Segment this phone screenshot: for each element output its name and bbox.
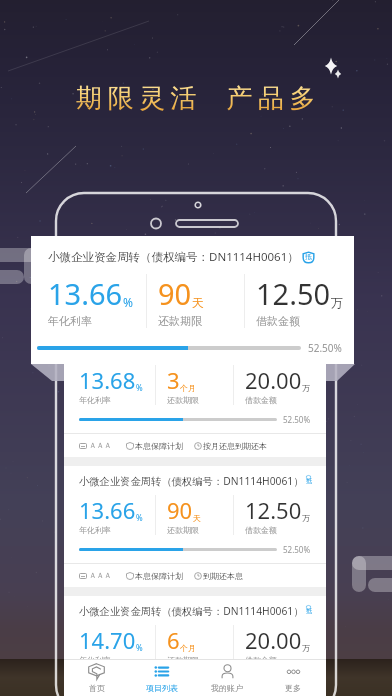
staticText: % xyxy=(123,294,133,310)
staticText: 借款金额 xyxy=(245,525,277,535)
button[interactable]: 我的账户 xyxy=(194,660,260,696)
staticText: 3 xyxy=(167,365,180,395)
staticText: 期限灵活 产品多 xyxy=(76,79,322,115)
staticText: 12.50 xyxy=(256,274,331,313)
staticText: 个月 xyxy=(180,643,196,653)
staticText: 还款期限 xyxy=(167,525,199,535)
staticText: 年化利率 xyxy=(79,525,111,535)
staticText: % xyxy=(136,382,143,393)
staticText: 13.66 xyxy=(79,495,136,525)
button[interactable]: 小微企业资金周转（债权编号：DN1114H0061） xyxy=(64,596,326,696)
staticText: 小微企业资金周转（债权编号：DN1114H0061） xyxy=(79,344,304,358)
staticText: 14.70 xyxy=(79,625,136,655)
staticText: 52.50% xyxy=(283,544,311,555)
staticText: 还款期限 xyxy=(167,395,199,405)
staticText: 还款期限 xyxy=(167,655,199,665)
staticText: 首页 xyxy=(89,683,105,693)
staticText: 我的账户 xyxy=(211,683,243,693)
staticText: 项目列表 xyxy=(146,683,178,693)
button[interactable]: 更多 xyxy=(260,660,326,696)
staticText: 年化利率 xyxy=(48,314,92,328)
staticText: 万 xyxy=(302,383,310,393)
button[interactable]: 项目列表 xyxy=(129,660,194,696)
button[interactable]: 小微企业资金周转（债权编号：DN1114H0061） xyxy=(64,466,326,587)
staticText: 13.66 xyxy=(48,274,123,313)
staticText: 抵 xyxy=(306,607,311,615)
staticText: 52.50% xyxy=(283,414,311,425)
staticText: 抵 xyxy=(306,347,311,355)
staticText: % xyxy=(136,512,143,523)
staticText: 抵 xyxy=(305,252,312,261)
staticText: 还款期限 xyxy=(158,314,202,328)
staticText: 更多 xyxy=(285,683,301,693)
staticText: 借款金额 xyxy=(245,655,277,665)
staticText: 抵 xyxy=(306,477,311,485)
staticText: 20.00 xyxy=(245,625,302,655)
staticText: 万 xyxy=(302,643,310,653)
staticText: 个月 xyxy=(180,383,196,393)
staticText: ＡＡＡ xyxy=(89,441,112,450)
staticText: 6 xyxy=(167,625,180,655)
button[interactable]: 小微企业资金周转（债权编号：DN1114H0061） xyxy=(64,336,326,457)
staticText: 52.50% xyxy=(308,341,342,355)
staticText: 年化利率 xyxy=(79,395,111,405)
staticText: 小微企业资金周转（债权编号：DN1114H0061） xyxy=(48,249,299,265)
staticText: 借款金额 xyxy=(256,314,300,328)
staticText: 90 xyxy=(158,274,192,313)
button[interactable]: 首页 xyxy=(64,660,129,696)
staticText: 小微企业资金周转（债权编号：DN1114H0061） xyxy=(79,604,304,618)
staticText: ＡＡＡ xyxy=(89,571,112,580)
staticText: 万 xyxy=(331,295,342,310)
staticText: 年化利率 xyxy=(79,655,111,665)
staticText: 借款金额 xyxy=(245,395,277,405)
staticText: 小微企业资金周转（债权编号：DN1114H0061） xyxy=(79,474,304,488)
staticText: % xyxy=(136,642,143,653)
button[interactable]: 小微企业资金周转（债权编号：DN1114H0061） xyxy=(31,236,354,364)
staticText: 本息保障计划 xyxy=(135,571,183,581)
staticText: 按月还息到期还本 xyxy=(203,441,267,451)
staticText: 万 xyxy=(302,513,310,523)
staticText: 天 xyxy=(192,295,204,310)
staticText: 本息保障计划 xyxy=(135,441,183,451)
staticText: 12.50 xyxy=(245,495,302,525)
staticText: 90 xyxy=(167,495,193,525)
staticText: 到期还本息 xyxy=(203,571,243,581)
staticText: 20.00 xyxy=(245,365,302,395)
staticText: 13.68 xyxy=(79,365,136,395)
staticText: 天 xyxy=(193,513,201,523)
